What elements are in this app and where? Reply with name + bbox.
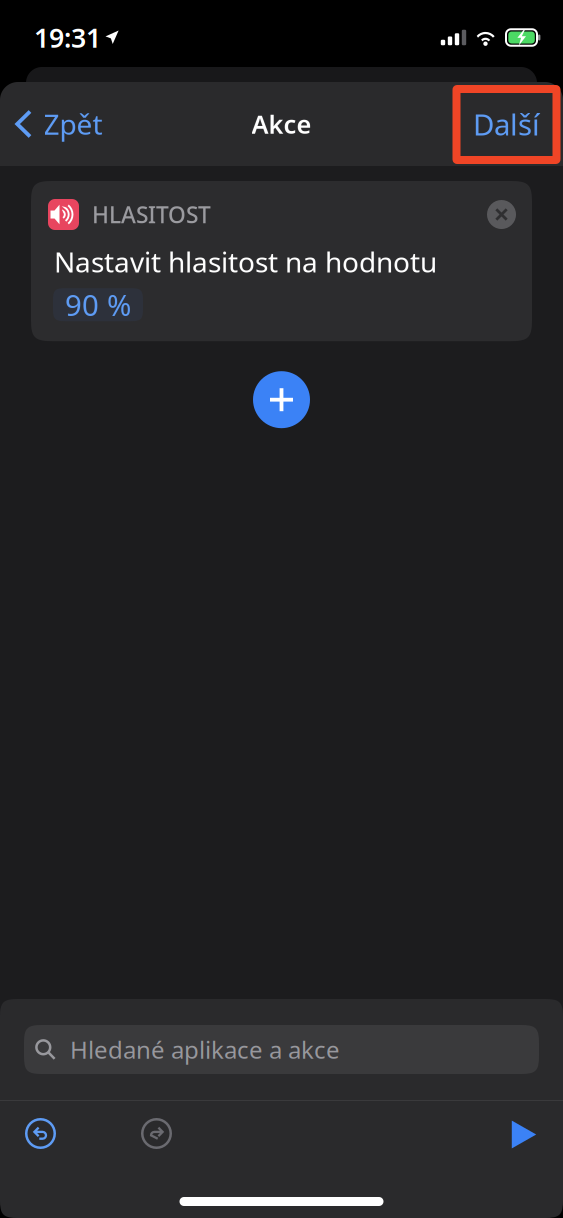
button[interactable]: Další [453,82,563,166]
staticText: Akce [251,107,311,141]
staticText: HLASITOST [92,199,211,229]
button[interactable]: Remove action [487,200,516,229]
staticText: Další [473,104,540,143]
button[interactable]: Hledané aplikace a akce [24,1025,539,1074]
button[interactable]: Run shortcut [493,1101,563,1154]
staticText: Zpět [43,105,102,143]
staticText: Hledané aplikace a akce [70,1034,340,1065]
staticText: 19:31 [34,20,101,55]
button[interactable]: Undo [0,1101,70,1154]
button[interactable]: Add action [253,371,310,428]
staticText: 90 % [65,285,131,324]
button[interactable]: Redo [70,1101,186,1154]
staticText: Nastavit hlasitost na hodnotu [54,243,437,280]
button[interactable]: Zpět [0,93,118,155]
